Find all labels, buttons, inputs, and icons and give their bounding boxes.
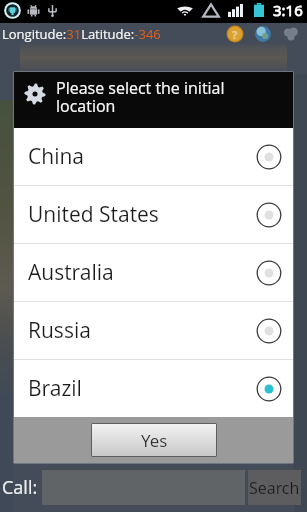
staticText: ?: [232, 27, 238, 42]
button[interactable]: Help: [226, 25, 244, 43]
staticText: Australia: [28, 258, 114, 287]
staticText: Russia: [28, 316, 91, 345]
staticText: Yes: [141, 429, 168, 452]
other: Settings: [24, 83, 46, 105]
staticText: Call:: [2, 475, 38, 500]
staticText: Search: [249, 477, 300, 499]
staticText: China: [28, 142, 85, 171]
button[interactable]: Layers: [282, 25, 300, 43]
button[interactable]: United States: [14, 186, 293, 243]
button[interactable]: Australia: [14, 244, 293, 301]
button[interactable]: Yes: [92, 424, 216, 456]
staticText: United States: [28, 200, 159, 229]
button[interactable]: China: [14, 128, 293, 185]
staticText: Brazil: [28, 374, 82, 403]
button[interactable]: Brazil: [14, 360, 293, 417]
button[interactable]: Search: [248, 470, 301, 505]
staticText: 3:16: [273, 0, 303, 20]
button[interactable]: Globe: [254, 25, 272, 43]
staticText: Longitude:31Latitude:-346: [2, 25, 161, 43]
button[interactable]: Russia: [14, 302, 293, 359]
staticText: Please select the initial location: [56, 77, 228, 117]
